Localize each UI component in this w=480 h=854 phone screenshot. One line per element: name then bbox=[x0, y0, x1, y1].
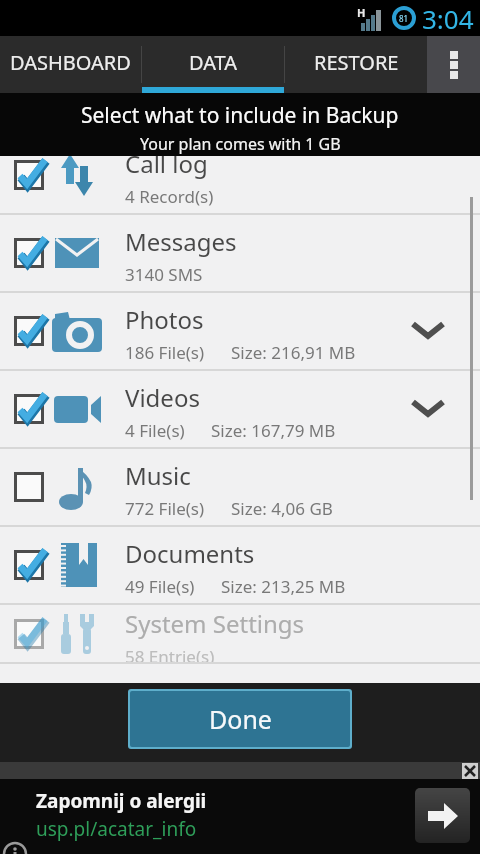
button[interactable] bbox=[427, 36, 480, 93]
staticText: Messages bbox=[125, 225, 237, 258]
staticText: RESTORE bbox=[314, 49, 399, 76]
staticText: 772 File(s) bbox=[125, 497, 205, 520]
staticText: Size: 167,79 MB bbox=[211, 419, 336, 442]
staticText: Size: 216,91 MB bbox=[231, 341, 356, 364]
button[interactable]: Music bbox=[0, 449, 480, 527]
button[interactable]: RESTORE bbox=[285, 36, 427, 93]
staticText: Your plan comes with 1 GB bbox=[140, 133, 341, 155]
staticText: Size: 4,06 GB bbox=[231, 497, 333, 520]
staticText: Videos bbox=[125, 381, 200, 414]
staticText: 49 File(s) bbox=[125, 575, 195, 598]
staticText: System Settings bbox=[125, 607, 305, 640]
staticText: Documents bbox=[125, 537, 255, 570]
staticText: 186 File(s) bbox=[125, 341, 205, 364]
staticText: DASHBOARD bbox=[10, 49, 131, 76]
button[interactable] bbox=[415, 788, 470, 843]
staticText: Call log bbox=[125, 156, 208, 180]
button[interactable]: System Settings bbox=[0, 605, 480, 664]
staticText: usp.pl/acatar_info bbox=[36, 816, 197, 842]
staticText: 3140 SMS bbox=[125, 263, 203, 286]
button[interactable]: Messages bbox=[0, 215, 480, 293]
staticText: 81 bbox=[399, 13, 409, 24]
button[interactable]: Photos bbox=[0, 293, 480, 371]
staticText: DATA bbox=[189, 49, 238, 76]
button[interactable]: Call log bbox=[0, 156, 480, 215]
staticText: Music bbox=[125, 459, 191, 492]
button[interactable]: Videos bbox=[0, 371, 480, 449]
button[interactable]: DATA bbox=[142, 36, 284, 93]
staticText: Photos bbox=[125, 303, 204, 336]
staticText: Select what to include in Backup bbox=[81, 101, 399, 130]
button[interactable]: Done bbox=[130, 691, 350, 747]
staticText: 58 Entrie(s) bbox=[125, 645, 215, 664]
button[interactable]: DASHBOARD bbox=[0, 36, 141, 93]
staticText: Zapomnij o alergii bbox=[36, 788, 207, 814]
staticText: Size: 213,25 MB bbox=[221, 575, 346, 598]
staticText: H bbox=[357, 5, 366, 20]
button[interactable] bbox=[462, 763, 478, 779]
staticText: Done bbox=[209, 702, 272, 736]
button[interactable]: Documents bbox=[0, 527, 480, 605]
staticText: 3:04 bbox=[422, 1, 474, 36]
staticText: 4 File(s) bbox=[125, 419, 185, 442]
button[interactable]: Zapomnij o alergii bbox=[0, 779, 480, 854]
staticText: 4 Record(s) bbox=[125, 185, 214, 208]
